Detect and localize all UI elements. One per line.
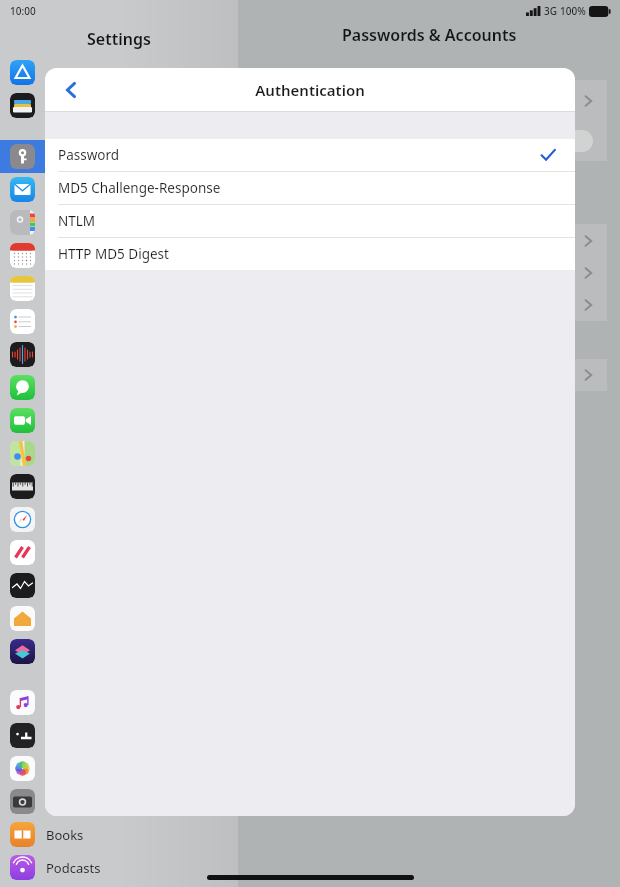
button[interactable]: HTTP MD5 Digest — [45, 238, 575, 270]
button[interactable] — [0, 635, 238, 668]
button[interactable]: Back — [49, 68, 93, 111]
staticText: 100% — [560, 4, 586, 18]
staticText: MD5 Challenge-Response — [58, 179, 221, 197]
button[interactable] — [0, 239, 238, 272]
button[interactable] — [0, 305, 238, 338]
staticText: Passwords & Accounts — [342, 24, 517, 46]
button[interactable] — [0, 371, 238, 404]
button[interactable]: MD5 Challenge-Response — [45, 172, 575, 204]
button[interactable] — [0, 338, 238, 371]
button[interactable] — [0, 785, 238, 818]
staticText: Books — [46, 826, 84, 844]
staticText: Settings — [87, 28, 151, 50]
button[interactable] — [0, 569, 238, 602]
button[interactable] — [0, 89, 238, 122]
button[interactable] — [0, 173, 238, 206]
button[interactable] — [0, 719, 238, 752]
button[interactable] — [0, 140, 238, 173]
staticText: Podcasts — [46, 859, 101, 877]
staticText: 3G — [544, 4, 557, 18]
button[interactable] — [0, 206, 238, 239]
button[interactable] — [0, 686, 238, 719]
button[interactable]: NTLM — [45, 205, 575, 237]
button[interactable] — [0, 536, 238, 569]
button[interactable] — [0, 404, 238, 437]
button[interactable] — [0, 503, 238, 536]
button[interactable]: Password — [45, 139, 575, 171]
button[interactable] — [0, 752, 238, 785]
button[interactable] — [0, 56, 238, 89]
button[interactable] — [0, 602, 238, 635]
button[interactable]: Books — [0, 818, 238, 851]
button[interactable] — [0, 470, 238, 503]
button[interactable] — [0, 437, 238, 470]
staticText: HTTP MD5 Digest — [58, 245, 169, 263]
button[interactable]: Podcasts — [0, 851, 238, 884]
staticText: Password — [58, 146, 120, 164]
staticText: NTLM — [58, 212, 96, 230]
staticText: Authentication — [255, 80, 365, 100]
button[interactable] — [0, 272, 238, 305]
staticText: 10:00 — [10, 4, 36, 18]
